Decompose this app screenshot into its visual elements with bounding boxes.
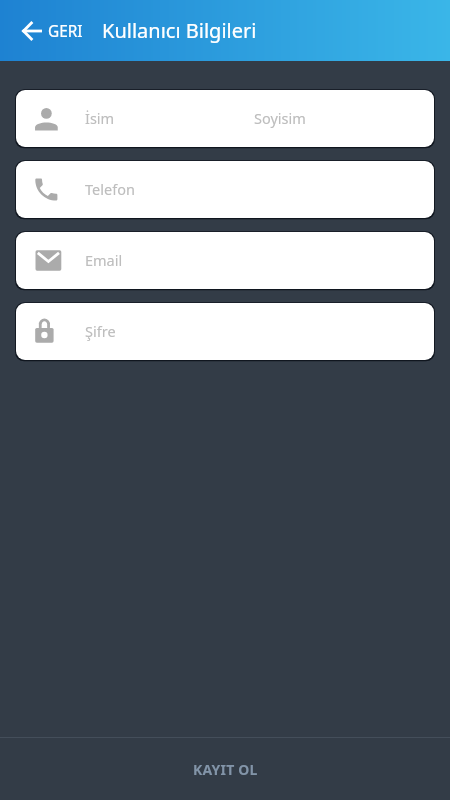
button[interactable]: Back bbox=[22, 20, 83, 41]
staticText: Şifre bbox=[85, 321, 116, 341]
staticText: GERI bbox=[48, 21, 83, 42]
staticText: Telefon bbox=[85, 179, 135, 199]
button[interactable]: Phone field bbox=[15, 160, 435, 219]
staticText: KAYIT OL bbox=[193, 760, 258, 779]
button[interactable]: Password field bbox=[15, 302, 435, 361]
staticText: Kullanıcı Bilgileri bbox=[102, 17, 257, 44]
staticText: İsim bbox=[85, 108, 115, 128]
staticText: Soyisim bbox=[254, 108, 306, 128]
staticText: Email bbox=[85, 250, 123, 270]
button[interactable]: KAYIT OL bbox=[0, 738, 450, 800]
button[interactable]: Email field bbox=[15, 231, 435, 290]
button[interactable]: Name field bbox=[15, 89, 435, 148]
